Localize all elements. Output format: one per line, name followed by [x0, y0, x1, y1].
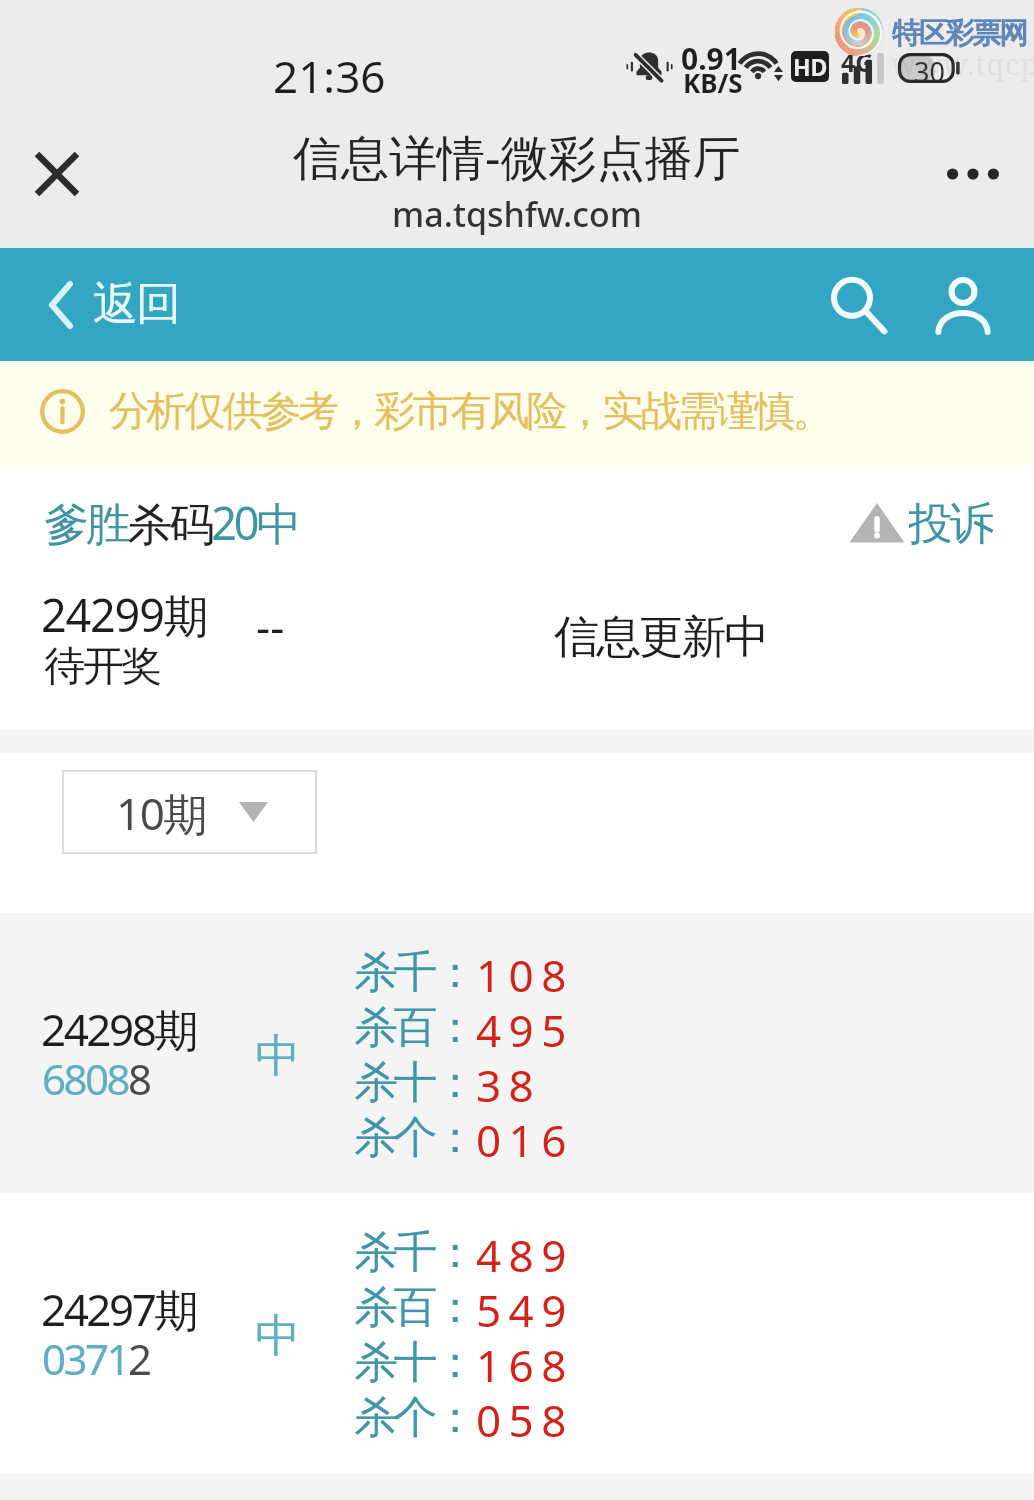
staticText: 0 1 6 — [476, 1110, 565, 1170]
staticText: 10期 — [116, 783, 206, 843]
staticText: -- — [256, 596, 285, 656]
staticText: 杀千： — [354, 1225, 473, 1280]
staticText: ma.tqshfw.com — [392, 191, 642, 237]
staticText: 杀十： — [354, 1335, 473, 1390]
staticText: 返回 — [94, 276, 180, 333]
staticText: 4 8 9 — [476, 1225, 565, 1285]
staticText: HD — [793, 51, 828, 82]
staticText: 投诉 — [909, 496, 993, 552]
staticText: 中 — [255, 1028, 300, 1085]
staticText: 1 6 8 — [476, 1335, 565, 1395]
staticText: 杀百： — [354, 1280, 473, 1335]
staticText: 信息更新中 — [554, 609, 767, 666]
staticText: 30 — [914, 53, 945, 83]
staticText: 24298期 — [41, 999, 196, 1059]
button[interactable]: 24298期 — [0, 913, 1034, 1193]
button[interactable]: Account — [920, 262, 1006, 348]
button[interactable]: Close — [10, 127, 104, 221]
button[interactable]: More options — [926, 127, 1020, 221]
staticText: 5 4 9 — [476, 1280, 565, 1340]
staticText: 中 — [255, 1308, 300, 1365]
staticText: 0.91 — [681, 38, 741, 79]
staticText: 杀十： — [354, 1055, 473, 1110]
staticText: 1 0 8 — [476, 945, 565, 1005]
staticText: 0 5 8 — [476, 1390, 565, 1450]
staticText: 杀百： — [354, 1000, 473, 1055]
staticText: 24299期 — [41, 584, 208, 645]
staticText: KB/S — [683, 65, 743, 100]
button[interactable]: 10期 — [62, 770, 317, 854]
button[interactable]: 返回 — [48, 276, 180, 333]
staticText: 特区彩票网 — [893, 15, 1027, 52]
staticText: 分析仅供参考，彩市有风险，实战需谨慎。 — [110, 386, 832, 438]
staticText: 03712 — [42, 1330, 150, 1387]
staticText: 24297期 — [41, 1279, 196, 1339]
staticText: www.tqcp.net — [891, 44, 1034, 83]
staticText: 杀个： — [354, 1390, 473, 1445]
staticText: 3 8 — [476, 1055, 532, 1115]
staticText: 信息详情-微彩点播厅 — [293, 124, 741, 190]
staticText: 68088 — [42, 1050, 150, 1107]
button[interactable]: 24297期 — [0, 1193, 1034, 1474]
staticText: 杀千： — [354, 945, 473, 1000]
staticText: 待开奖 — [44, 641, 160, 693]
staticText: 21:36 — [273, 46, 386, 106]
staticText: 4 9 5 — [476, 1000, 565, 1060]
button[interactable]: Search — [815, 262, 901, 348]
staticText: 4G — [841, 45, 874, 79]
button[interactable]: 投诉 — [849, 496, 993, 552]
staticText: 爹胜杀码20中 — [44, 492, 299, 553]
staticText: 杀个： — [354, 1110, 473, 1165]
